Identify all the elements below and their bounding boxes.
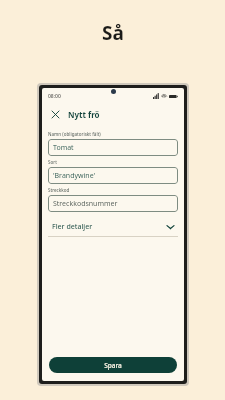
staticText: 08:00 <box>48 93 61 100</box>
staticText: Spara <box>104 361 122 370</box>
staticText: Sort <box>48 159 57 165</box>
staticText: Streckkodsnummer <box>53 199 118 209</box>
staticText: Namn (obligatoriskt fält) <box>48 131 101 137</box>
staticText: Fler detaljer <box>52 222 93 232</box>
button[interactable]: Tomat <box>48 139 178 156</box>
staticText: Streckkod <box>48 187 70 193</box>
button[interactable]: 'Brandywine' <box>48 167 178 184</box>
button[interactable]: Fler detaljer <box>42 218 184 236</box>
staticText: Nytt frö <box>68 109 100 120</box>
button[interactable]: Spara <box>49 357 177 373</box>
staticText: Så <box>102 20 124 46</box>
button[interactable]: Stäng <box>48 107 62 121</box>
staticText: Tomat <box>53 143 74 153</box>
staticText: 'Brandywine' <box>53 171 96 181</box>
button[interactable]: Streckkodsnummer <box>48 195 178 212</box>
